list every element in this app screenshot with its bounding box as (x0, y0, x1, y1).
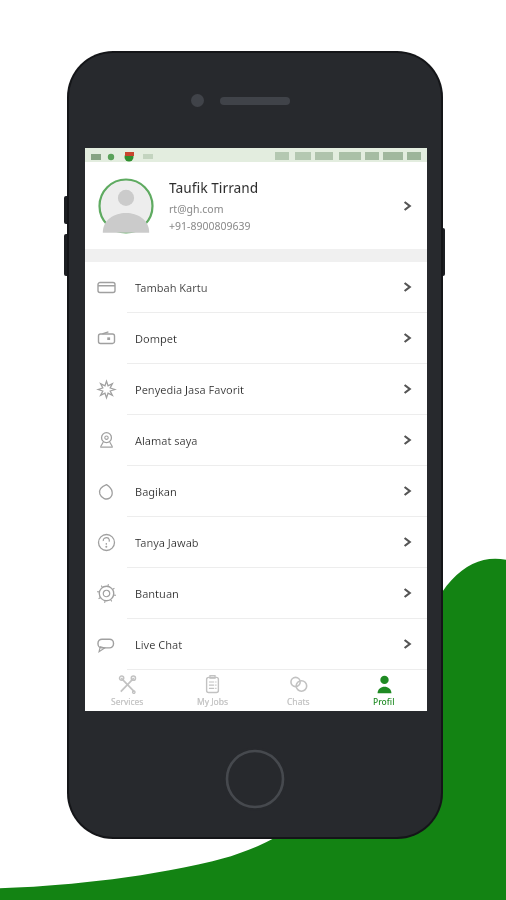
button[interactable]: Chats (255, 670, 341, 711)
button[interactable]: Profil (341, 670, 427, 711)
staticText: Bantuan (135, 586, 399, 601)
staticText: Chats (287, 696, 310, 708)
button[interactable]: My Jobs (170, 670, 255, 711)
staticText: Penyedia Jasa Favorit (135, 382, 399, 397)
staticText: Live Chat (135, 637, 399, 652)
button[interactable]: Bagikan (85, 466, 427, 516)
staticText: Services (111, 696, 144, 708)
button[interactable]: Services (85, 670, 170, 711)
button[interactable]: Tanya Jawab (85, 517, 427, 567)
staticText: Dompet (135, 331, 399, 346)
button[interactable]: Tentang Suwun (85, 670, 427, 711)
staticText: +91-8900809639 (169, 219, 251, 233)
staticText: Taufik Tirrand (169, 179, 259, 197)
button[interactable]: Live Chat (85, 619, 427, 669)
button[interactable]: Dompet (85, 313, 427, 363)
button[interactable]: Penyedia Jasa Favorit (85, 364, 427, 414)
staticText: Bagikan (135, 484, 399, 499)
button[interactable]: Alamat saya (85, 415, 427, 465)
button[interactable]: Tambah Kartu (85, 262, 427, 312)
staticText: Tambah Kartu (135, 280, 399, 295)
staticText: rt@gh.com (169, 202, 224, 216)
button[interactable]: Bantuan (85, 568, 427, 618)
button[interactable]: Taufik Tirrand (85, 162, 427, 249)
button[interactable]: Home (223, 747, 287, 811)
staticText: Profil (373, 696, 395, 708)
staticText: My Jobs (197, 696, 229, 708)
staticText: Alamat saya (135, 433, 399, 448)
staticText: Tanya Jawab (135, 535, 399, 550)
staticText: Tentang Suwun (135, 683, 399, 698)
